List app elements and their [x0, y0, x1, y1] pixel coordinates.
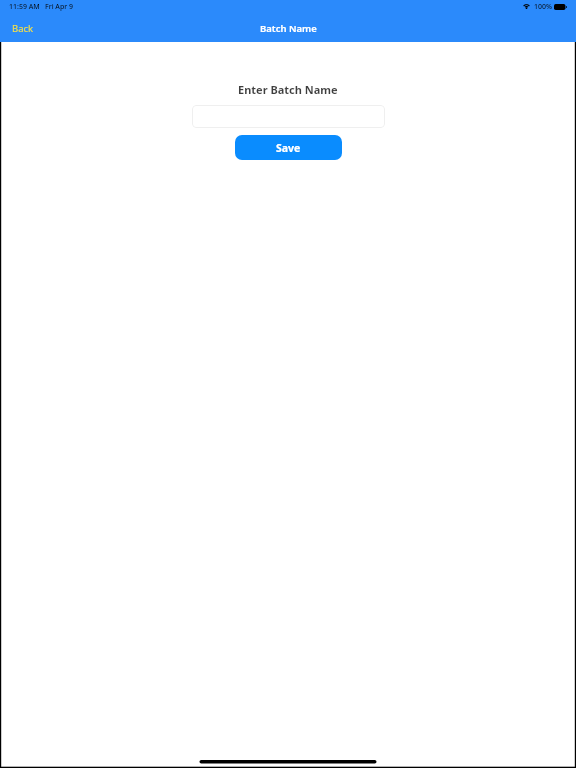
staticText: Save [276, 141, 301, 155]
button[interactable]: Back [0, 18, 46, 38]
staticText: Batch Name [260, 22, 317, 35]
staticText: 100% [534, 2, 552, 12]
button[interactable]: Batch name input [192, 105, 385, 128]
staticText: Fri Apr 9 [45, 2, 74, 12]
staticText: 11:59 AM [9, 2, 40, 12]
other: Battery full [554, 4, 567, 10]
staticText: Back [12, 22, 34, 34]
other: Wi-Fi [522, 2, 531, 13]
button[interactable]: Save [235, 135, 342, 160]
staticText: Enter Batch Name [238, 82, 338, 97]
